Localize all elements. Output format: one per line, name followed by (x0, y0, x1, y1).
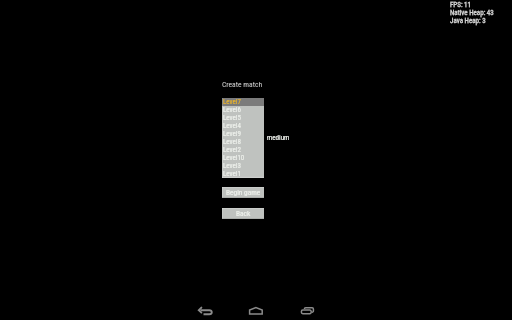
staticText: Level6 (223, 106, 241, 114)
staticText: FPS: 11 (450, 1, 472, 9)
button[interactable]: Level7 (222, 98, 264, 106)
staticText: Level2 (223, 146, 241, 154)
staticText: Level1 (223, 170, 241, 178)
button[interactable]: Level9 (222, 130, 264, 138)
staticText: Level10 (223, 154, 245, 162)
button[interactable]: Begin game (222, 187, 264, 198)
staticText: Level7 (223, 98, 241, 106)
staticText: Create match (222, 80, 263, 89)
button[interactable]: Back (196, 303, 216, 318)
button[interactable]: Level1 (222, 170, 264, 178)
button[interactable]: Home (247, 303, 267, 318)
button[interactable]: Level6 (222, 106, 264, 114)
button[interactable]: Level8 (222, 138, 264, 146)
staticText: Native Heap: 43 (450, 9, 494, 17)
button[interactable]: Level2 (222, 146, 264, 154)
button[interactable]: Level5 (222, 114, 264, 122)
staticText: medium (267, 134, 290, 142)
staticText: Java Heap: 3 (450, 17, 486, 25)
button[interactable]: Back (222, 208, 264, 219)
staticText: Level5 (223, 114, 241, 122)
button[interactable]: Recent apps (298, 303, 318, 318)
staticText: Back (236, 209, 251, 218)
staticText: Level9 (223, 130, 241, 138)
staticText: Begin game (226, 188, 261, 197)
button[interactable]: Level10 (222, 154, 264, 162)
button[interactable]: Level3 (222, 162, 264, 170)
staticText: Level4 (223, 122, 241, 130)
staticText: Level8 (223, 138, 241, 146)
button[interactable]: Level4 (222, 122, 264, 130)
staticText: Level3 (223, 162, 241, 170)
